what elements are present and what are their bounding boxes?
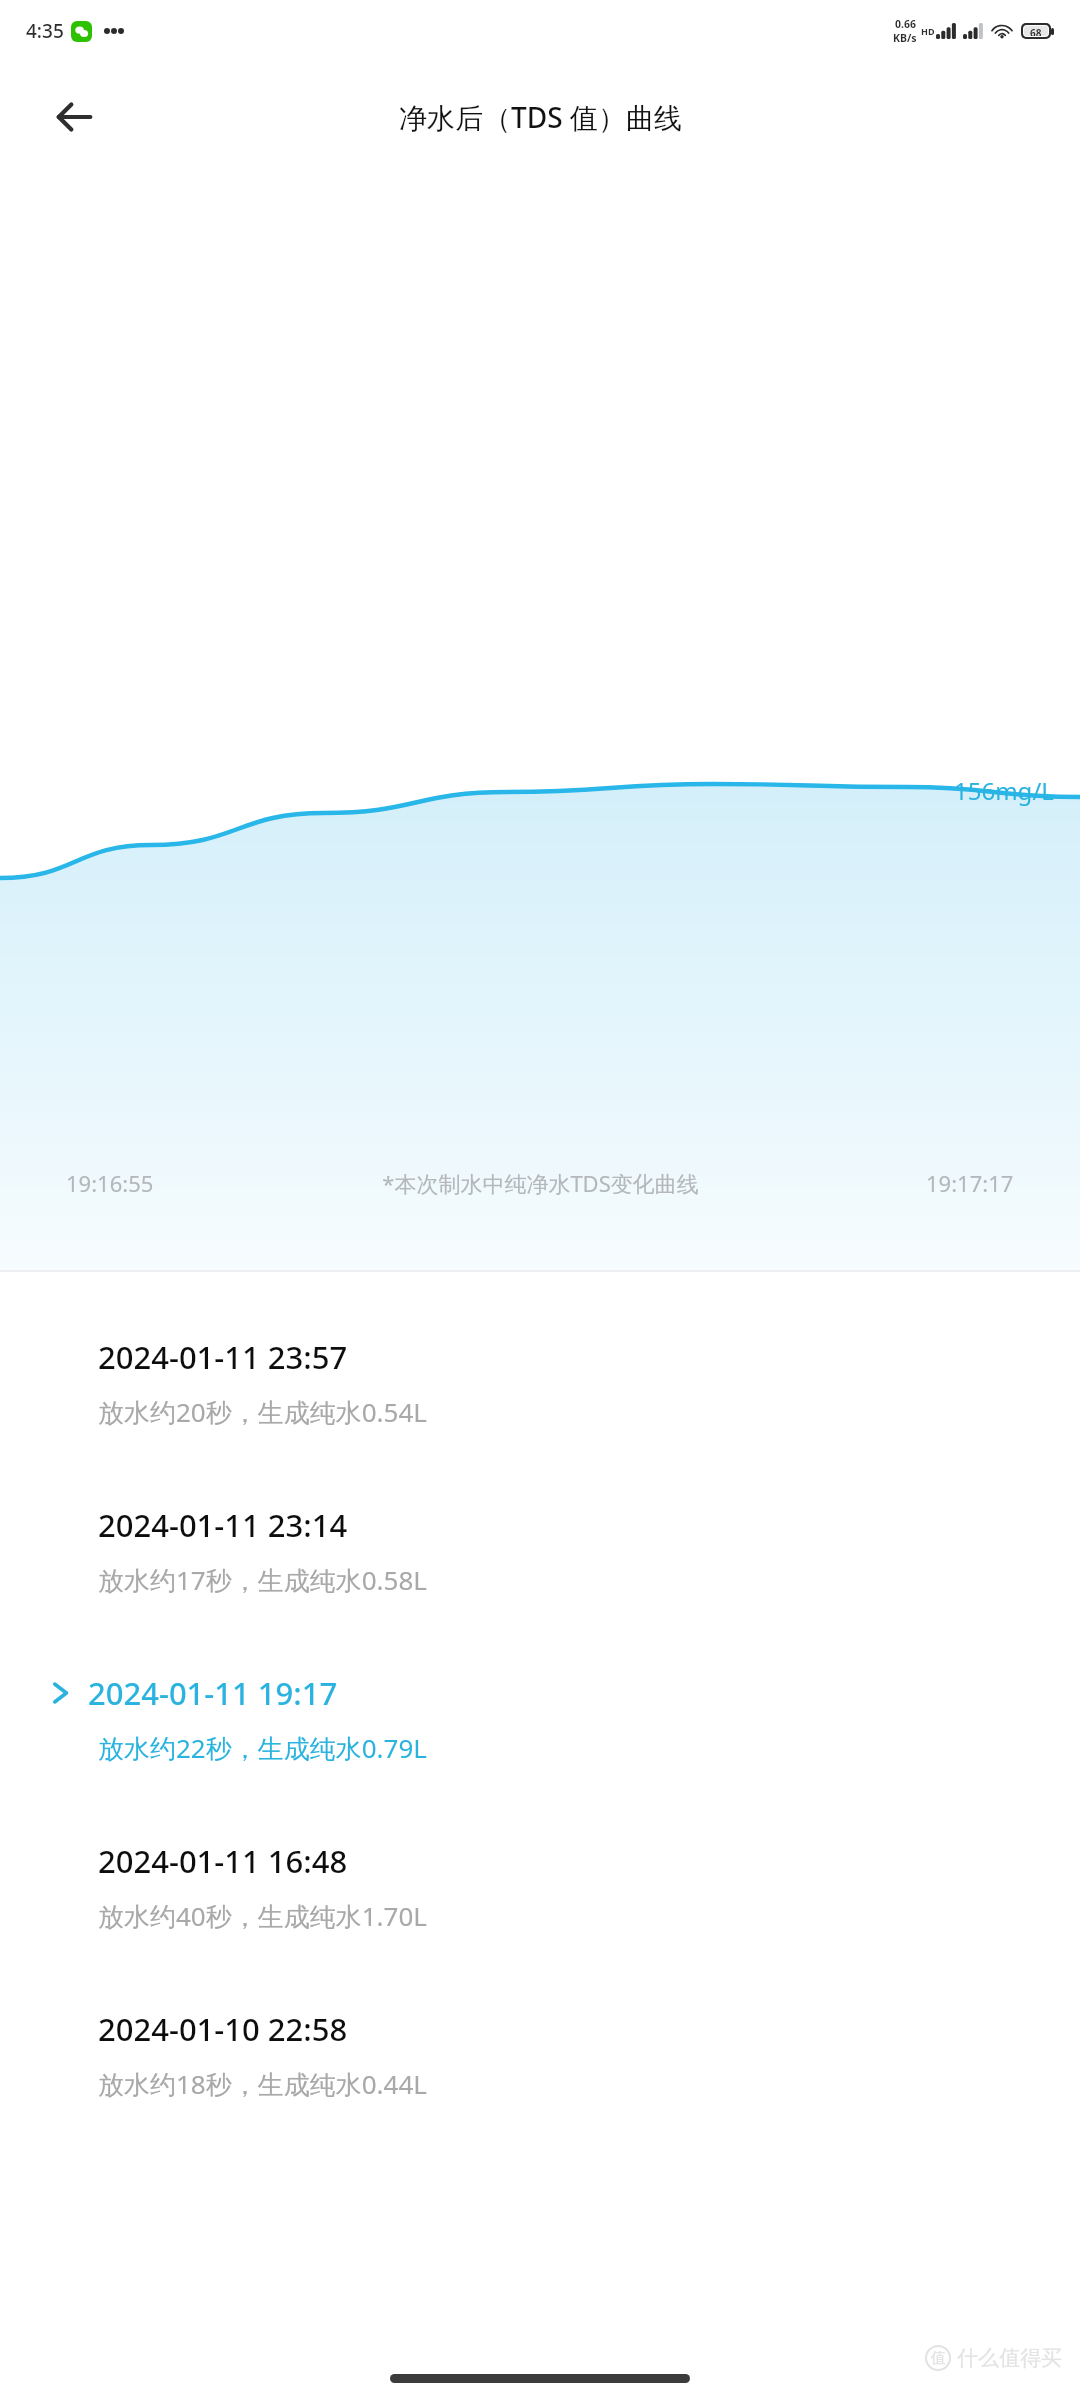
staticText: 放水约18秒，生成纯水0.44L bbox=[98, 2066, 427, 2102]
staticText: HD bbox=[921, 25, 935, 37]
staticText: 放水约20秒，生成纯水0.54L bbox=[98, 1394, 427, 1430]
staticText: 放水约22秒，生成纯水0.79L bbox=[98, 1730, 427, 1766]
staticText: *本次制水中纯净水TDS变化曲线 bbox=[382, 1168, 699, 1198]
staticText: 19:16:55 bbox=[66, 1168, 154, 1198]
staticText: 什么值得买 bbox=[957, 2345, 1062, 2371]
staticText: 2024-01-10 22:58 bbox=[98, 2008, 348, 2050]
staticText: 值 bbox=[931, 2349, 946, 2368]
staticText: 19:17:17 bbox=[926, 1168, 1014, 1198]
staticText: 净水后（TDS 值）曲线 bbox=[399, 98, 682, 136]
button[interactable]: Back bbox=[40, 83, 108, 151]
button[interactable]: 2024-01-10 22:58 bbox=[0, 1934, 1080, 2102]
staticText: 放水约40秒，生成纯水1.70L bbox=[98, 1898, 427, 1934]
staticText: 2024-01-11 23:57 bbox=[98, 1336, 348, 1378]
staticText: 68 bbox=[1030, 26, 1042, 36]
button[interactable]: 2024-01-11 19:17 bbox=[0, 1598, 1080, 1766]
staticText: 2024-01-11 16:48 bbox=[98, 1840, 348, 1882]
staticText: 0.66 bbox=[895, 17, 916, 31]
staticText: 2024-01-11 19:17 bbox=[88, 1672, 338, 1714]
button[interactable]: 2024-01-11 23:57 bbox=[0, 1272, 1080, 1430]
staticText: 2024-01-11 23:14 bbox=[98, 1504, 348, 1546]
staticText: 4:35 bbox=[26, 18, 64, 44]
staticText: KB/s bbox=[893, 31, 917, 45]
staticText: 放水约17秒，生成纯水0.58L bbox=[98, 1562, 427, 1598]
staticText: 156mg/L bbox=[954, 774, 1054, 807]
button[interactable]: 2024-01-11 23:14 bbox=[0, 1430, 1080, 1598]
button[interactable]: 2024-01-11 16:48 bbox=[0, 1766, 1080, 1934]
